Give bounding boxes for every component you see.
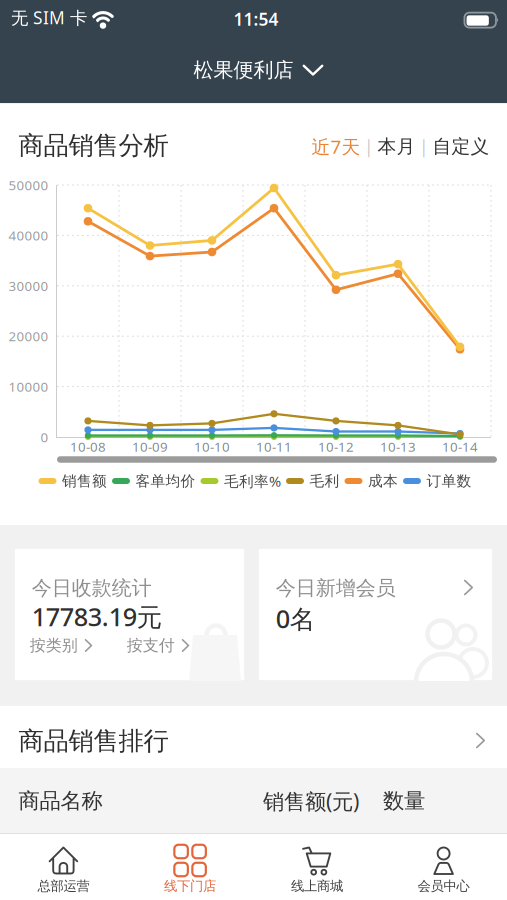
staticText: 11:54 [233, 7, 278, 30]
staticText: 商品名称 [18, 788, 102, 814]
staticText: 10-13 [380, 438, 416, 455]
staticText: 松果便利店 [193, 58, 293, 82]
button[interactable]: 按支付 [127, 636, 189, 655]
button[interactable]: 总部运营 [3, 836, 123, 900]
staticText: 会员中心 [418, 878, 470, 894]
staticText: 数量 [383, 788, 425, 814]
staticText: 30000 [8, 277, 48, 295]
staticText: 销售额 [62, 472, 107, 490]
staticText: 无 SIM 卡 [11, 6, 87, 29]
button[interactable]: 自定义 [432, 135, 489, 158]
staticText: 总部运营 [37, 878, 89, 894]
button[interactable]: 松果便利店 [193, 58, 323, 82]
button[interactable]: 本月 [377, 135, 415, 158]
button[interactable]: 按类别 [30, 636, 92, 655]
staticText: 本月 [377, 135, 415, 158]
staticText: 毛利 [309, 472, 339, 490]
button[interactable]: 会员中心 [384, 836, 504, 900]
staticText: 商品销售分析 [18, 130, 168, 161]
staticText: 线上商城 [291, 878, 343, 894]
button[interactable]: 近7天 [311, 134, 360, 159]
staticText: 成本 [368, 472, 398, 490]
button[interactable]: 商品销售排行 [0, 706, 507, 768]
staticText: 17783.19元 [32, 600, 162, 633]
staticText: 按类别 [30, 636, 78, 655]
staticText: | [364, 135, 374, 158]
staticText: 毛利率% [224, 471, 281, 491]
staticText: 商品销售排行 [18, 725, 168, 756]
button[interactable]: 线下门店 [130, 836, 250, 900]
staticText: 今日新增会员 [276, 576, 396, 600]
button[interactable]: 今日新增会员 [258, 548, 493, 681]
staticText: 销售额(元) [263, 787, 359, 815]
staticText: 线下门店 [164, 878, 216, 894]
staticText: 按支付 [127, 636, 175, 655]
staticText: 近7天 [311, 134, 360, 159]
staticText: 0 [40, 428, 48, 446]
staticText: 客单均价 [135, 472, 195, 490]
staticText: 10-12 [318, 438, 354, 455]
staticText: 10-08 [70, 438, 106, 455]
staticText: | [419, 135, 429, 158]
staticText: 0名 [276, 602, 315, 635]
staticText: 10-10 [194, 438, 230, 455]
staticText: 10-11 [256, 438, 292, 455]
staticText: 今日收款统计 [32, 576, 152, 600]
staticText: 10-14 [442, 438, 478, 455]
button[interactable]: 线上商城 [257, 836, 377, 900]
staticText: 自定义 [432, 135, 489, 158]
staticText: 10000 [8, 378, 48, 395]
staticText: 20000 [8, 327, 48, 345]
staticText: 订单数 [426, 472, 471, 490]
staticText: 50000 [8, 176, 48, 194]
staticText: 40000 [8, 226, 48, 244]
staticText: 10-09 [132, 438, 168, 455]
